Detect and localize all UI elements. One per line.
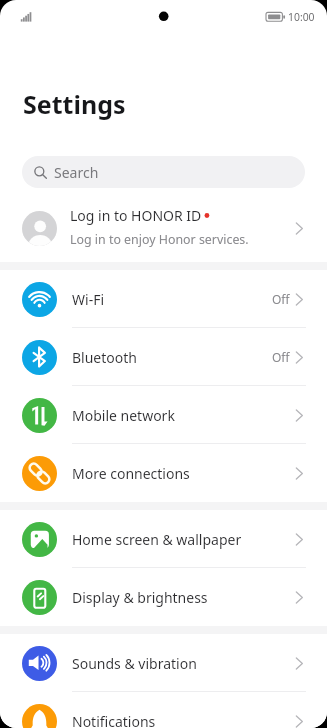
button[interactable]: Wi-Fi [0,270,327,328]
staticText: Notifications [72,712,292,728]
button[interactable]: Mobile network [0,386,327,444]
button[interactable]: Sounds & vibration [0,634,327,692]
staticText: More connections [72,464,292,483]
staticText: Settings [23,87,126,121]
button[interactable]: More connections [0,444,327,502]
button[interactable]: Display & brightness [0,568,327,626]
staticText: Mobile network [72,406,292,425]
other: Open account [292,222,305,235]
staticText: Sounds & vibration [72,654,292,673]
button[interactable]: Bluetooth [0,328,327,386]
staticText: Bluetooth [72,348,272,367]
staticText: Off [272,349,290,365]
button[interactable]: Search [22,156,305,188]
staticText: Display & brightness [72,588,292,607]
button[interactable]: Notifications [0,692,327,728]
staticText: Search [54,163,99,182]
staticText: 10:00 [288,10,315,24]
staticText: Log in to HONOR ID [70,206,202,225]
staticText: Log in to enjoy Honor services. [70,231,249,248]
button[interactable]: Log in to HONOR ID [0,195,327,262]
staticText: Home screen & wallpaper [72,530,292,549]
button[interactable]: Home screen & wallpaper [0,510,327,568]
staticText: Off [272,291,290,307]
staticText: Wi-Fi [72,290,272,309]
